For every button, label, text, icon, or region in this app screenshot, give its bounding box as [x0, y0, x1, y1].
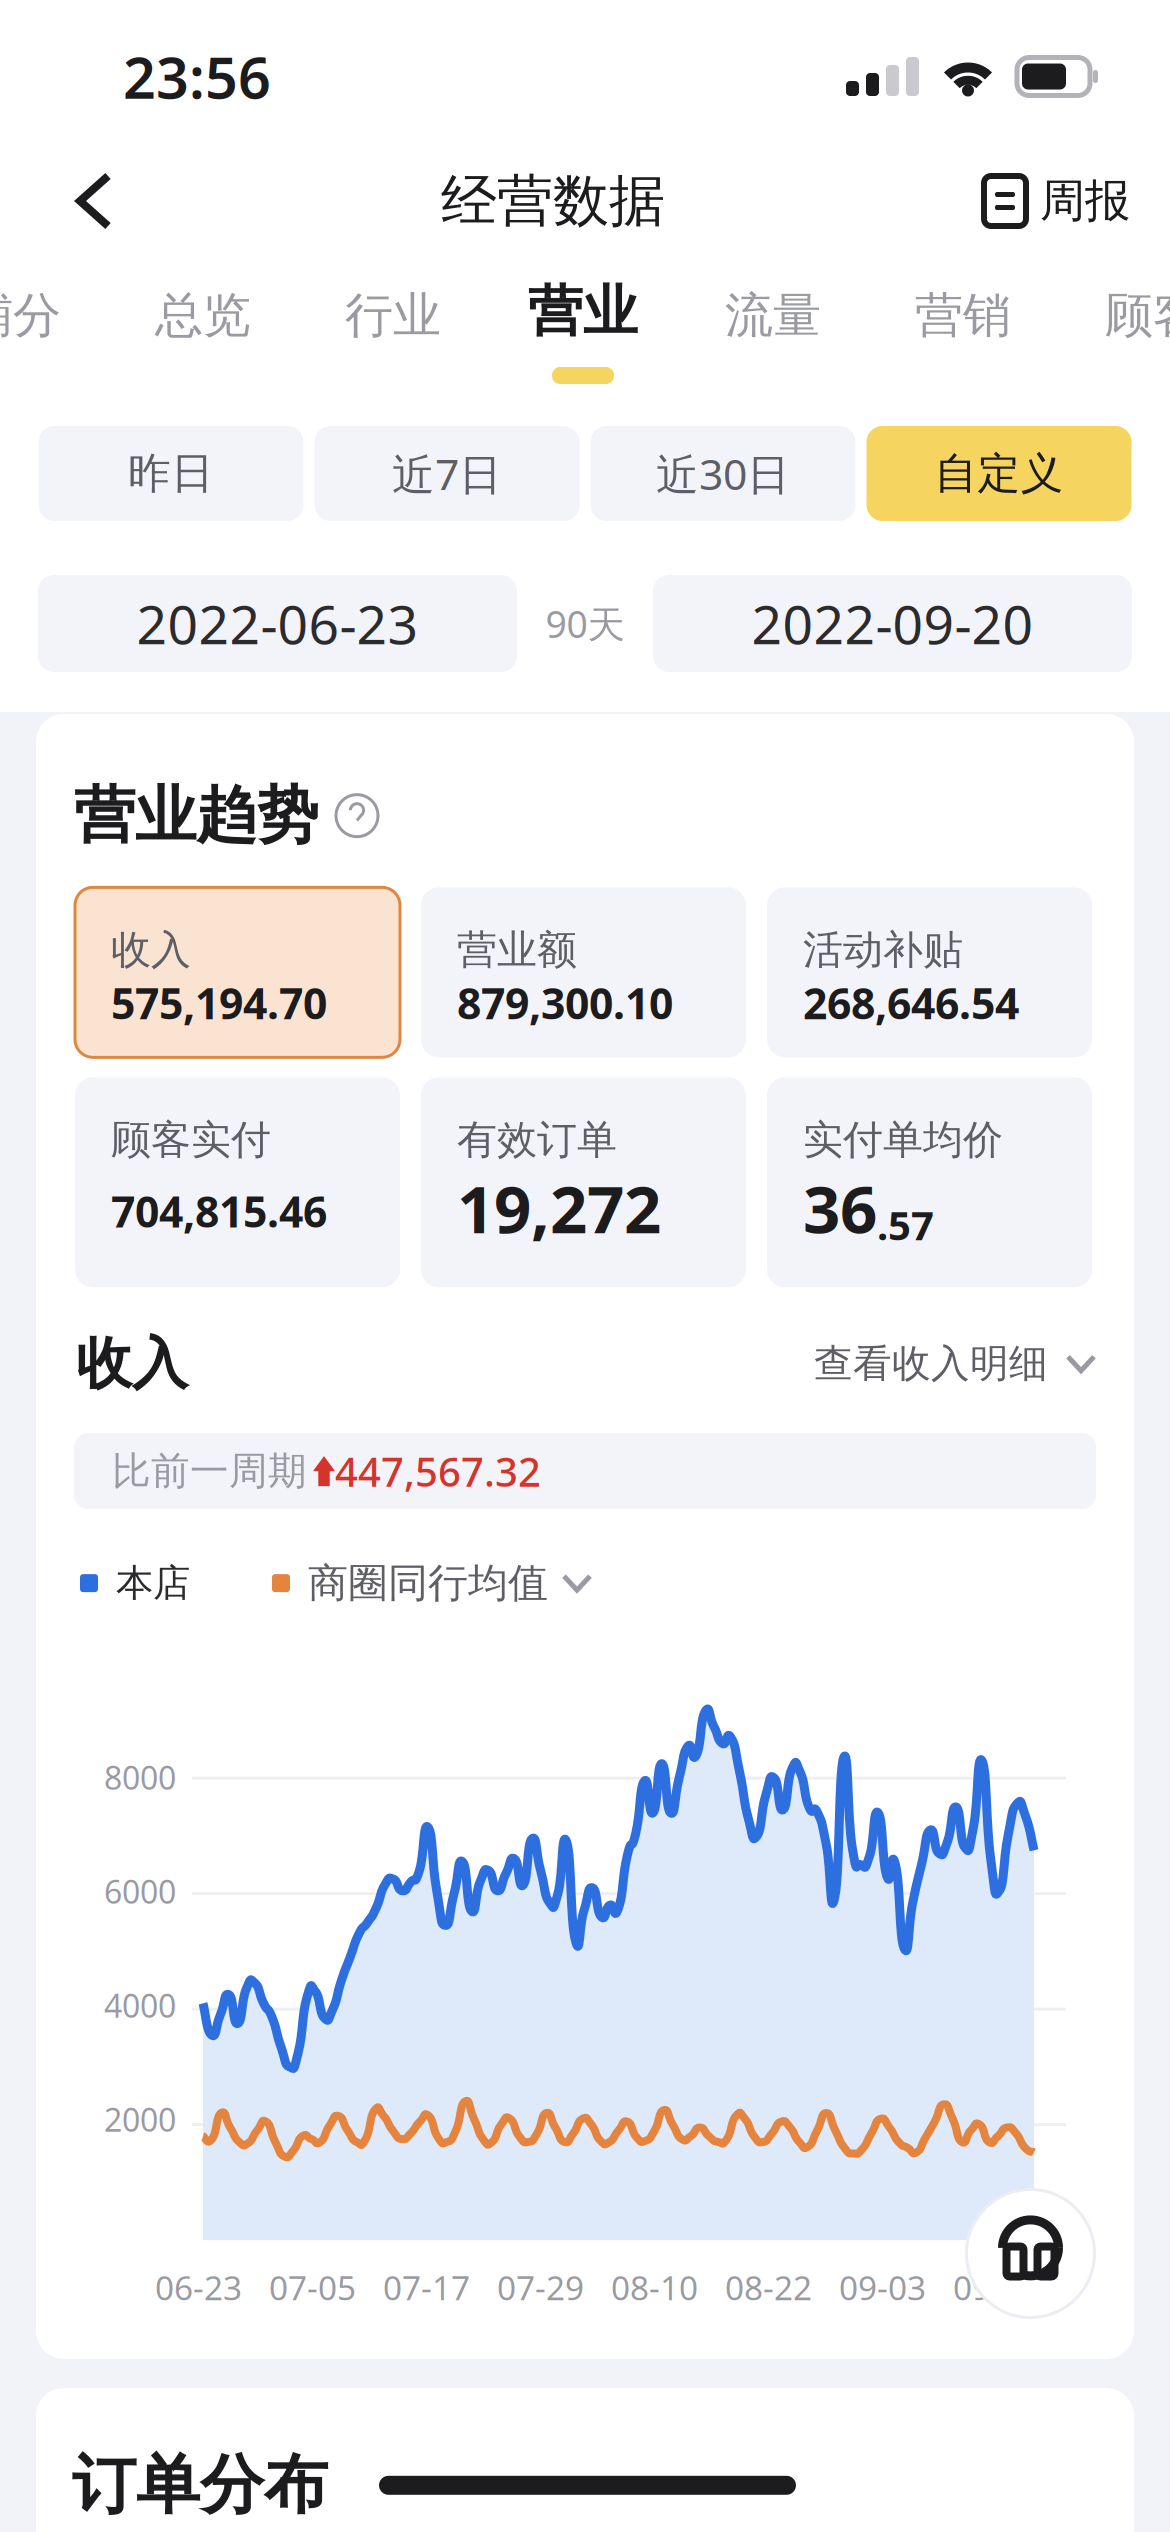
button[interactable]: 行业	[298, 269, 488, 399]
staticText: 铺分	[0, 286, 61, 345]
staticText: 879,300.10	[457, 974, 673, 1031]
staticText: 06-23	[155, 2265, 242, 2309]
staticText: 昨日	[128, 447, 214, 500]
staticText: 2000	[104, 2098, 176, 2141]
staticText: 07-05	[269, 2265, 356, 2309]
staticText: 近7日	[392, 445, 502, 502]
staticText: 订单分布	[72, 2446, 328, 2525]
staticText: 07-29	[497, 2265, 584, 2309]
button[interactable]: 营销	[868, 269, 1058, 399]
button[interactable]: 周报	[958, 163, 1170, 259]
button[interactable]: 2022-09-20	[653, 575, 1132, 672]
button[interactable]: Back	[0, 166, 148, 256]
button[interactable]: 总览	[108, 269, 298, 399]
staticText: 07-17	[383, 2265, 470, 2309]
button[interactable]: More series	[548, 1558, 606, 1608]
button[interactable]: 顾客实付	[75, 1077, 400, 1287]
staticText: 实付单均价	[803, 1115, 1003, 1164]
staticText: 19,272	[457, 1165, 661, 1251]
staticText: 自定义	[934, 447, 1063, 500]
staticText: 商圈同行均值	[308, 1559, 548, 1608]
staticText: 08-10	[611, 2265, 698, 2309]
button[interactable]: 营业额	[421, 887, 746, 1057]
staticText: 行业	[345, 286, 441, 345]
staticText: 704,815.46	[111, 1183, 327, 1239]
button[interactable]: 2022-06-23	[38, 575, 517, 672]
staticText: 4000	[104, 1984, 176, 2027]
button[interactable]: 查看收入明细	[814, 1340, 1094, 1387]
staticText: 6000	[104, 1870, 176, 1913]
staticText: 2022-09-20	[751, 588, 1033, 659]
button[interactable]: 近7日	[314, 426, 579, 521]
staticText: 09-03	[839, 2265, 926, 2309]
staticText: 顾客实付	[111, 1115, 271, 1164]
staticText: 268,646.54	[803, 974, 1019, 1031]
button[interactable]: 收入	[75, 887, 400, 1057]
staticText: .57	[877, 1198, 934, 1251]
button[interactable]: 顾客	[1058, 269, 1170, 399]
staticText: 营业趋势	[74, 778, 318, 853]
button[interactable]: 营业	[488, 269, 678, 399]
button[interactable]: Help	[336, 795, 378, 837]
staticText: 36	[803, 1165, 877, 1251]
button[interactable]: 近30日	[590, 426, 855, 521]
staticText: 本店	[116, 1560, 190, 1606]
staticText: 575,194.70	[111, 974, 327, 1031]
staticText: 流量	[725, 286, 821, 345]
button[interactable]: 实付单均价	[767, 1077, 1092, 1287]
button[interactable]: 铺分	[0, 269, 108, 399]
staticText: 比前一周期	[112, 1447, 307, 1495]
button[interactable]: 有效订单	[421, 1077, 746, 1287]
staticText: 查看收入明细	[814, 1340, 1048, 1387]
staticText: 总览	[155, 286, 251, 345]
staticText: 营业	[528, 278, 638, 345]
staticText: 90天	[545, 599, 624, 648]
staticText: 近30日	[656, 445, 790, 502]
staticText: 收入	[76, 1329, 188, 1398]
staticText: 2022-06-23	[136, 588, 418, 659]
staticText: 营业额	[457, 925, 577, 974]
staticText: 营销	[915, 286, 1011, 345]
staticText: 收入	[111, 925, 191, 974]
staticText: 经营数据	[441, 167, 665, 235]
staticText: 活动补贴	[803, 925, 963, 974]
staticText: 有效订单	[457, 1115, 617, 1164]
staticText: 周报	[1040, 173, 1130, 229]
staticText: 8000	[104, 1756, 176, 1799]
button[interactable]: 流量	[678, 269, 868, 399]
button[interactable]: 活动补贴	[767, 887, 1092, 1057]
staticText: 447,567.32	[335, 1445, 541, 1498]
staticText: 09-	[953, 2265, 1002, 2309]
staticText: 08-22	[725, 2265, 812, 2309]
button[interactable]: 自定义	[866, 426, 1131, 521]
button[interactable]: Support	[965, 2188, 1134, 2359]
staticText: 23:56	[123, 38, 271, 114]
button[interactable]: 昨日	[38, 426, 303, 521]
staticText: 顾客	[1105, 286, 1170, 345]
